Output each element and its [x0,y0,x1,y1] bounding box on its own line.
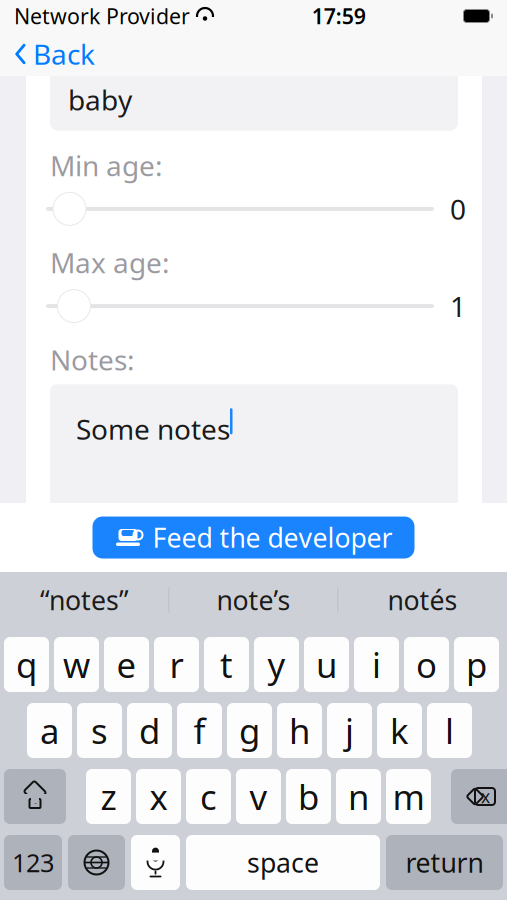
button[interactable]: a [27,703,72,758]
button[interactable]: j [327,703,372,758]
button[interactable]: z [86,769,131,824]
button[interactable]: note’s [169,572,337,628]
staticText: i [372,641,381,687]
button[interactable]: e [104,637,149,692]
staticText: w [63,641,90,687]
staticText: e [116,641,136,687]
staticText: x [481,785,490,808]
staticText: q [16,641,37,687]
staticText: b [298,773,319,819]
staticText: a [40,707,59,753]
button[interactable]: g [227,703,272,758]
staticText: 17:59 [312,2,366,30]
button[interactable]: “notes” [0,572,168,628]
staticText: j [345,707,354,753]
staticText: d [139,707,160,753]
button[interactable]: space [186,835,380,890]
button[interactable]: h [277,703,322,758]
button[interactable]: i [354,637,399,692]
staticText: f [193,707,205,753]
staticText: Some notes [76,410,230,447]
staticText: Network Provider [14,2,190,30]
button[interactable]: Feed the developer [92,516,414,558]
button[interactable]: q [4,637,49,692]
button[interactable]: r [154,637,199,692]
staticText: o [416,641,437,687]
staticText: “notes” [40,582,129,618]
staticText: x [149,773,167,819]
staticText: v [249,773,267,819]
button[interactable]: f [177,703,222,758]
staticText: h [289,707,310,753]
button[interactable]: t [204,637,249,692]
staticText: 0 [450,190,466,227]
button[interactable]: b [286,769,331,824]
button[interactable]: v [236,769,281,824]
button[interactable]: c [186,769,231,824]
button[interactable]: m [386,769,431,824]
staticText: t [220,641,233,687]
button[interactable]: Delete [451,769,507,824]
staticText: Notes: [50,341,135,378]
staticText: u [316,641,337,687]
staticText: note’s [216,582,290,618]
staticText: r [169,641,183,687]
button[interactable]: notés [338,572,506,628]
staticText: k [390,707,409,753]
button[interactable]: Back [0,32,105,76]
staticText: notés [387,582,457,618]
staticText: n [348,773,369,819]
staticText: space [247,845,319,880]
button[interactable]: u [304,637,349,692]
button[interactable]: n [336,769,381,824]
staticText: y [267,641,285,687]
staticText: l [445,707,454,753]
button[interactable]: Next keyboard [68,835,125,890]
staticText: 123 [12,846,54,879]
button[interactable]: return [386,835,503,890]
staticText: z [100,773,116,819]
button[interactable]: y [254,637,299,692]
staticText: return [405,845,483,880]
button[interactable]: 123 [4,835,62,890]
button[interactable]: w [54,637,99,692]
staticText: p [466,641,487,687]
staticText: m [392,773,424,819]
staticText: c [200,773,217,819]
staticText: Max age: [50,244,170,281]
staticText: Feed the developer [152,520,392,555]
button[interactable]: l [427,703,472,758]
button[interactable]: x [136,769,181,824]
button[interactable]: o [404,637,449,692]
button[interactable]: Dictate [131,835,180,890]
button[interactable]: p [454,637,499,692]
staticText: Min age: [50,147,163,184]
staticText: g [239,707,260,753]
staticText: baby [68,81,132,118]
button[interactable]: d [127,703,172,758]
staticText: 1 [450,287,466,325]
staticText: Back [33,35,95,73]
button[interactable]: k [377,703,422,758]
button[interactable]: s [77,703,122,758]
button[interactable]: Shift [4,769,66,824]
staticText: s [91,707,108,753]
